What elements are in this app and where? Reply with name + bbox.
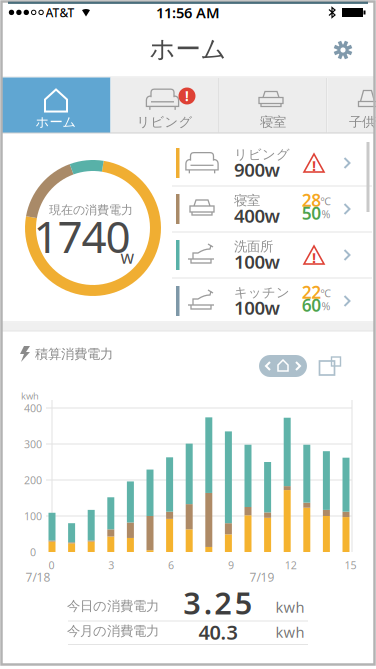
button[interactable]: グラフ切替	[318, 356, 341, 376]
button[interactable]: キッチン	[172, 278, 372, 324]
staticText: 7/18	[25, 569, 50, 585]
staticText: 今日の消費電力	[67, 598, 159, 614]
staticText: 9	[228, 558, 234, 572]
staticText: kwh	[275, 597, 304, 617]
staticText: ホーム	[35, 114, 76, 130]
staticText: 1740	[33, 207, 130, 265]
button[interactable]: 洗面所	[172, 232, 372, 278]
staticText: 60	[302, 293, 321, 316]
button[interactable]: 子供部屋	[327, 77, 373, 133]
staticText: 0	[30, 545, 36, 559]
staticText: 今月の消費電力	[67, 623, 159, 639]
button[interactable]: 表示切替	[259, 355, 307, 377]
staticText: 100	[24, 509, 42, 523]
staticText: 6	[168, 558, 174, 572]
staticText: 50	[302, 201, 321, 224]
staticText: 洗面所	[234, 238, 273, 255]
staticText: %	[321, 299, 330, 313]
staticText: 寝室	[234, 192, 260, 209]
staticText: 100w	[234, 295, 280, 320]
staticText: 22	[302, 280, 321, 303]
staticText: 子供部屋	[349, 114, 376, 130]
staticText: ホーム	[149, 33, 226, 64]
staticText: リビング	[234, 146, 290, 163]
button[interactable]: リビング	[172, 140, 372, 186]
staticText: 積算消費電力	[35, 346, 113, 362]
staticText: 400	[24, 401, 42, 415]
staticText: 900w	[234, 157, 280, 182]
button[interactable]: リビング	[110, 77, 219, 133]
staticText: 現在の消費電力	[49, 203, 133, 217]
staticText: 寝室	[260, 114, 286, 130]
staticText: w	[120, 245, 134, 268]
button[interactable]: ホーム	[2, 77, 110, 133]
staticText: ℃	[320, 194, 331, 208]
staticText: 0	[48, 558, 54, 572]
button[interactable]: 設定	[323, 30, 363, 70]
staticText: 11:56 AM	[156, 3, 220, 22]
staticText: AT&T	[45, 4, 74, 20]
staticText: 300	[24, 437, 42, 451]
staticText: 400w	[234, 203, 280, 228]
staticText: kwh	[21, 390, 39, 402]
staticText: kwh	[275, 622, 304, 642]
staticText: 100w	[234, 249, 280, 274]
staticText: %	[321, 207, 330, 221]
staticText: リビング	[136, 114, 192, 130]
staticText: ℃	[320, 286, 331, 300]
staticText: 3	[108, 558, 114, 572]
staticText: !	[185, 87, 189, 105]
staticText: !	[312, 248, 316, 267]
staticText: 3.25	[183, 582, 253, 623]
staticText: 28	[302, 188, 321, 211]
button[interactable]: 寝室	[219, 77, 327, 133]
staticText: 7/19	[249, 569, 274, 585]
staticText: 12	[285, 558, 297, 572]
staticText: キッチン	[234, 284, 290, 301]
staticText: 40.3	[198, 619, 237, 645]
button[interactable]: 寝室	[172, 186, 372, 232]
staticText: 200	[24, 473, 42, 487]
staticText: 15	[344, 558, 356, 572]
staticText: !	[312, 156, 316, 175]
